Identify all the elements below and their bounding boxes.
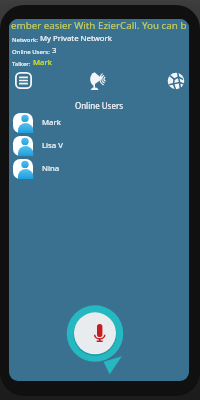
staticText: Nina xyxy=(42,163,60,174)
staticText: Lisa V xyxy=(42,140,63,151)
button[interactable]: Mark xyxy=(9,111,189,134)
button[interactable]: Satellite xyxy=(89,71,109,91)
button[interactable]: Nina xyxy=(9,157,189,180)
button[interactable]: Menu list xyxy=(14,71,33,90)
staticText: Online Users: xyxy=(12,48,52,56)
staticText: 3 xyxy=(52,45,57,56)
staticText: Mark xyxy=(42,117,61,128)
staticText: Network: xyxy=(12,36,40,44)
staticText: ember easier With EzierCall. You can b xyxy=(11,19,187,31)
staticText: Online Users xyxy=(9,100,189,111)
staticText: Talker: xyxy=(12,60,33,68)
button[interactable]: Push to talk xyxy=(57,300,133,376)
button[interactable]: Lisa V xyxy=(9,134,189,157)
staticText: My Private Network xyxy=(40,33,112,44)
staticText: Mark xyxy=(33,57,52,68)
button[interactable]: Network globe xyxy=(166,71,185,90)
